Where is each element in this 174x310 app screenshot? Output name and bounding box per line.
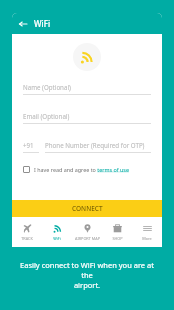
- button[interactable]: CONNECT: [12, 200, 162, 217]
- button[interactable]: More: [132, 217, 162, 247]
- staticText: SHOP: [112, 236, 123, 241]
- button[interactable]: I have read and agree to terms of use: [23, 166, 151, 173]
- staticText: Easily connect to WiFi when you are at t…: [14, 260, 160, 290]
- staticText: WiFi: [53, 236, 61, 241]
- button[interactable]: Name (Optional): [23, 83, 151, 95]
- staticText: WiFi: [34, 18, 51, 29]
- button[interactable]: +91: [23, 141, 151, 153]
- button[interactable]: SHOP: [102, 217, 132, 247]
- button[interactable]: AIRPORT MAP: [72, 217, 102, 247]
- button[interactable]: WiFi: [42, 217, 72, 247]
- staticText: +91: [23, 141, 34, 149]
- staticText: TRACK: [21, 236, 33, 241]
- button[interactable]: Email (Optional): [23, 112, 151, 124]
- staticText: Name (Optional): [23, 83, 71, 91]
- staticText: Phone Number (Required for OTP): [45, 141, 145, 149]
- staticText: I have read and agree to terms of use: [34, 166, 129, 173]
- staticText: CONNECT: [72, 204, 103, 213]
- staticText: AIRPORT MAP: [75, 236, 100, 241]
- button[interactable]: TRACK: [12, 217, 42, 247]
- button[interactable]: Back: [16, 17, 29, 30]
- staticText: More: [142, 236, 152, 241]
- staticText: Email (Optional): [23, 112, 70, 120]
